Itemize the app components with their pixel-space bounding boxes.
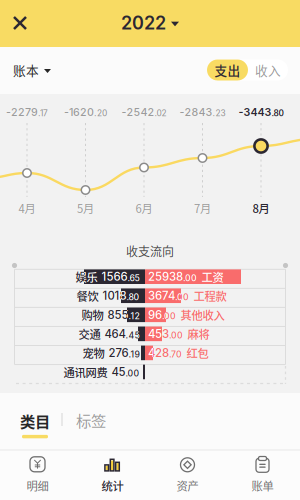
staticText: .65 xyxy=(127,273,139,283)
staticText: 45 xyxy=(111,365,125,379)
staticText: .80 xyxy=(271,108,283,118)
staticText: 工程款 xyxy=(193,287,226,304)
staticText: 宠物 xyxy=(82,345,104,361)
staticText: .17 xyxy=(38,108,48,118)
staticText: 其他收入 xyxy=(180,307,224,323)
staticText: 麻将 xyxy=(187,326,209,342)
staticText: .19 xyxy=(128,349,139,360)
staticText: 类目 xyxy=(20,410,50,432)
staticText: -2542 xyxy=(121,105,154,118)
staticText: .70 xyxy=(169,349,182,360)
staticText: 娱乐 xyxy=(75,268,97,285)
staticText: .00 xyxy=(125,368,139,379)
staticText: -2279 xyxy=(6,105,38,118)
button[interactable]: 2022 xyxy=(110,7,190,39)
staticText: 工资 xyxy=(201,268,223,285)
staticText: 7月 xyxy=(194,200,211,216)
staticText: .12 xyxy=(128,311,139,321)
staticText: 标签 xyxy=(76,409,106,431)
staticText: .70 xyxy=(169,349,182,360)
staticText: 收入 xyxy=(255,61,281,79)
staticText: .00 xyxy=(183,273,197,283)
staticText: 8月 xyxy=(252,200,269,216)
button[interactable]: 标签 xyxy=(66,408,116,432)
staticText: 工程款 xyxy=(193,287,226,304)
button[interactable]: 账本 xyxy=(13,57,73,83)
staticText: 收支流向 xyxy=(126,242,174,260)
button[interactable]: 收入 xyxy=(248,59,288,80)
staticText: -2843 xyxy=(179,105,212,118)
staticText: 855 xyxy=(107,308,128,322)
staticText: .00 xyxy=(125,368,139,379)
staticText: .20 xyxy=(94,108,107,118)
staticText: 账单 xyxy=(251,477,273,494)
staticText: .00 xyxy=(169,330,183,340)
staticText: 资产 xyxy=(176,477,198,494)
staticText: .00 xyxy=(183,273,197,283)
staticText: 1018 xyxy=(102,289,126,303)
staticText: 红包 xyxy=(186,345,208,361)
staticText: 账本 xyxy=(13,61,39,79)
staticText: .00 xyxy=(169,330,183,340)
button[interactable]: 类目 xyxy=(10,408,60,440)
staticText: 购物 xyxy=(81,307,103,323)
button[interactable]: Close xyxy=(0,0,40,47)
staticText: .02 xyxy=(154,108,166,118)
staticText: 娱乐 xyxy=(75,268,97,285)
staticText: 通讯网费 xyxy=(63,364,107,380)
staticText: .19 xyxy=(128,349,139,360)
staticText: .80 xyxy=(126,292,139,302)
staticText: .45 xyxy=(125,330,139,340)
staticText: 2022 xyxy=(121,12,166,34)
staticText: 支出 xyxy=(214,61,240,79)
staticText: 855 xyxy=(107,308,128,322)
staticText: 明细 xyxy=(26,477,48,494)
staticText: 464 xyxy=(104,327,125,341)
button[interactable]: 统计 xyxy=(75,450,150,500)
staticText: 96 xyxy=(148,308,162,322)
staticText: 交通 xyxy=(78,326,100,342)
button[interactable]: 明细 xyxy=(0,450,75,500)
staticText: .12 xyxy=(128,311,139,321)
button[interactable]: 资产 xyxy=(150,450,225,500)
staticText: 1018 xyxy=(102,289,126,303)
staticText: 交通 xyxy=(78,326,100,342)
staticText: 428 xyxy=(148,346,169,360)
staticText: .00 xyxy=(175,292,189,302)
staticText: 1566 xyxy=(101,270,127,283)
staticText: .23 xyxy=(212,108,225,118)
staticText: 1566 xyxy=(101,270,127,283)
staticText: 餐饮 xyxy=(76,287,98,304)
staticText: 麻将 xyxy=(187,326,209,342)
staticText: 3674 xyxy=(148,289,175,303)
staticText: 45 xyxy=(111,365,125,379)
staticText: 276 xyxy=(108,346,128,360)
staticText: .00 xyxy=(162,311,176,321)
staticText: 96 xyxy=(148,308,162,322)
staticText: 购物 xyxy=(81,307,103,323)
staticText: 6月 xyxy=(135,200,152,216)
staticText: 其他收入 xyxy=(180,307,224,323)
staticText: 3674 xyxy=(148,289,175,303)
staticText: .00 xyxy=(162,311,176,321)
staticText: 453 xyxy=(148,327,169,341)
staticText: .45 xyxy=(125,330,139,340)
staticText: 428 xyxy=(148,346,169,360)
staticText: 276 xyxy=(108,346,128,360)
button[interactable]: 支出 xyxy=(207,59,248,80)
staticText: 通讯网费 xyxy=(63,364,107,380)
staticText: -1620 xyxy=(64,105,94,118)
staticText: 工资 xyxy=(201,268,223,285)
staticText: 464 xyxy=(104,327,125,341)
staticText: 25938 xyxy=(148,270,183,283)
staticText: .80 xyxy=(126,292,139,302)
staticText: .65 xyxy=(127,273,139,283)
staticText: 红包 xyxy=(186,345,208,361)
staticText: -3443 xyxy=(238,105,271,118)
staticText: 4月 xyxy=(18,200,35,216)
button[interactable]: 账单 xyxy=(225,450,300,500)
staticText: 宠物 xyxy=(82,345,104,361)
staticText: 统计 xyxy=(101,477,123,494)
staticText: .00 xyxy=(175,292,189,302)
staticText: 5月 xyxy=(77,200,94,216)
